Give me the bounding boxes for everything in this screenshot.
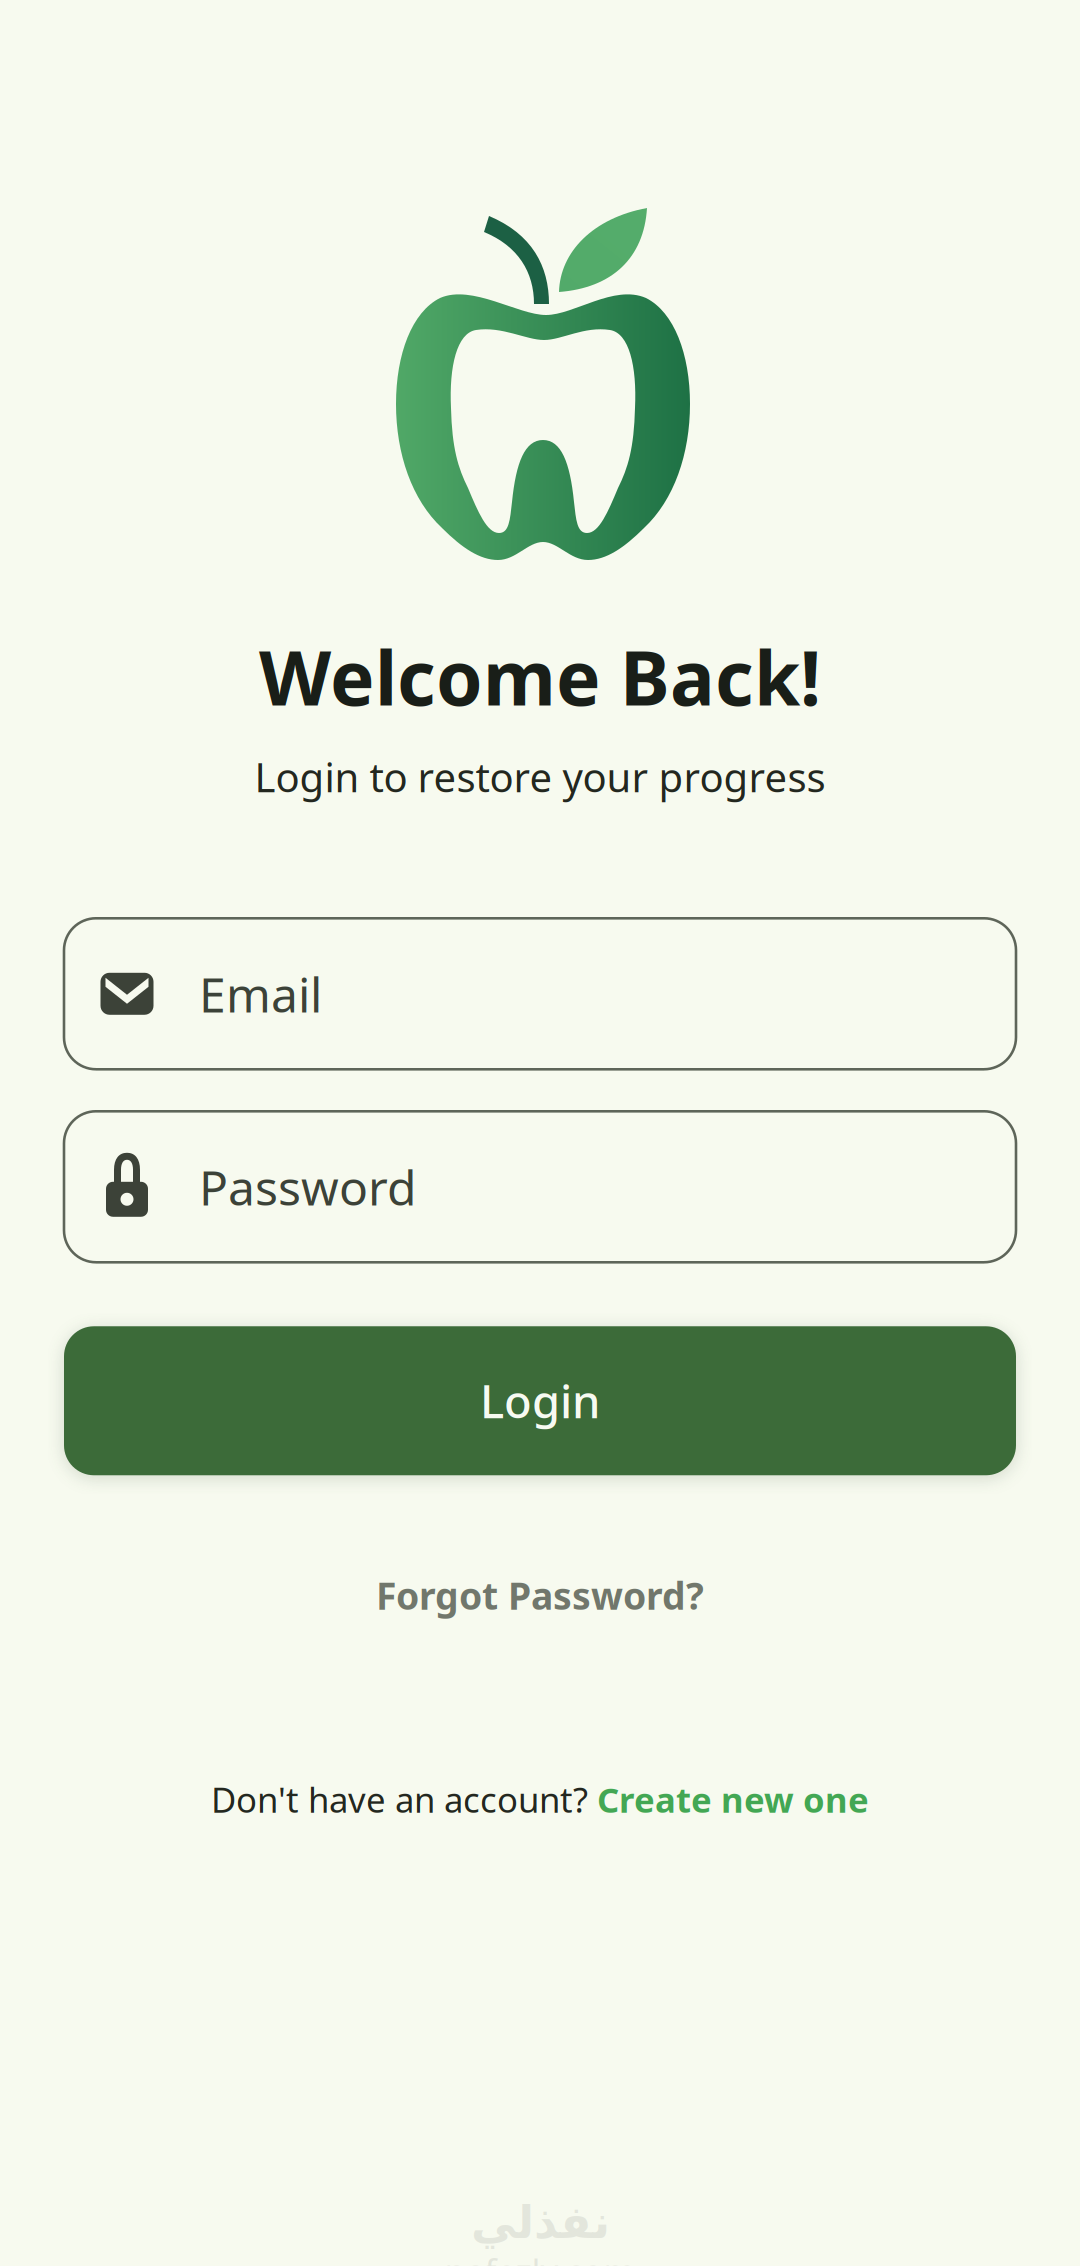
staticText: Login to restore your progress bbox=[254, 750, 825, 803]
staticText: نفذلي bbox=[470, 2196, 609, 2248]
button[interactable]: Password bbox=[64, 1111, 1016, 1262]
staticText: Create new one bbox=[597, 1776, 869, 1822]
button[interactable]: Email bbox=[64, 918, 1016, 1069]
staticText: Password bbox=[199, 1155, 417, 1219]
staticText: Forgot Password? bbox=[376, 1570, 704, 1620]
button[interactable]: Forgot Password? bbox=[64, 1565, 1016, 1625]
staticText: Email bbox=[199, 962, 322, 1026]
staticText: Login bbox=[480, 1371, 600, 1431]
button[interactable]: Create new one bbox=[597, 1776, 869, 1822]
button[interactable]: Login bbox=[64, 1326, 1016, 1475]
staticText: Don't have an account? bbox=[211, 1776, 597, 1822]
staticText: Welcome Back! bbox=[259, 627, 821, 726]
